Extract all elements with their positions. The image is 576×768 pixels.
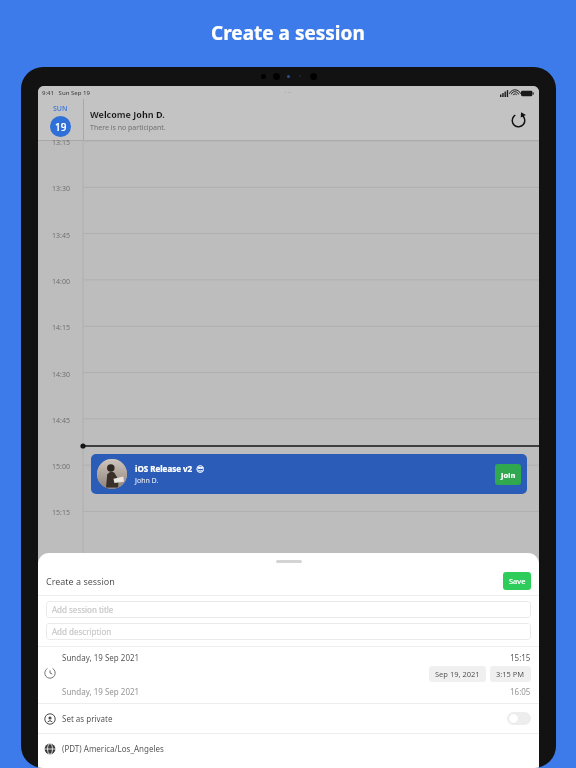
button[interactable]: Sep 19, 2021 <box>429 666 486 682</box>
staticText: Set as private <box>62 713 113 724</box>
staticText: Sunday, 19 Sep 2021 <box>62 686 140 697</box>
button[interactable]: (PDT) America/Los_Angeles <box>38 734 539 763</box>
staticText: Join <box>501 470 516 480</box>
button[interactable]: Set as private <box>38 704 539 733</box>
staticText: 3:15 PM <box>496 669 525 679</box>
staticText: SUN <box>53 104 68 114</box>
staticText: Welcome John D. <box>90 108 165 120</box>
staticText: 9:41 Sun Sep 19 <box>42 89 90 97</box>
button[interactable]: 3:15 PM <box>490 666 531 682</box>
staticText: Save <box>509 576 526 586</box>
staticText: 15:15 <box>52 508 70 518</box>
staticText: John D. <box>135 476 159 486</box>
staticText: 13:45 <box>52 231 70 241</box>
staticText: · · · <box>285 89 292 96</box>
staticText: (PDT) America/Los_Angeles <box>62 743 164 754</box>
staticText: Add description <box>52 626 112 637</box>
button[interactable]: Refresh <box>507 109 529 131</box>
button[interactable]: Set as private toggle <box>507 712 531 725</box>
button[interactable]: Add session title <box>46 601 531 618</box>
staticText: 19 <box>55 120 67 134</box>
button[interactable]: iOS Release v2 😎 <box>91 454 527 494</box>
staticText: 16:05 <box>510 686 531 697</box>
staticText: 15:00 <box>52 462 70 472</box>
staticText: 14:30 <box>52 370 70 380</box>
staticText: Add session title <box>52 604 114 615</box>
staticText: Create a session <box>46 575 115 587</box>
button[interactable]: Join <box>495 464 521 485</box>
staticText: 14:45 <box>52 416 70 426</box>
staticText: 14:00 <box>52 277 70 287</box>
staticText: 13:30 <box>52 184 70 194</box>
staticText: Sunday, 19 Sep 2021 <box>62 652 140 663</box>
staticText: iOS Release v2 😎 <box>135 463 205 474</box>
staticText: There is no participant. <box>90 123 166 133</box>
staticText: 13:15 <box>52 138 70 148</box>
button[interactable]: Save <box>503 572 531 590</box>
button[interactable]: Add description <box>46 623 531 640</box>
staticText: Create a session <box>211 20 365 46</box>
staticText: 14:15 <box>52 323 70 333</box>
staticText: 15:15 <box>510 652 531 663</box>
staticText: Sep 19, 2021 <box>435 669 480 679</box>
